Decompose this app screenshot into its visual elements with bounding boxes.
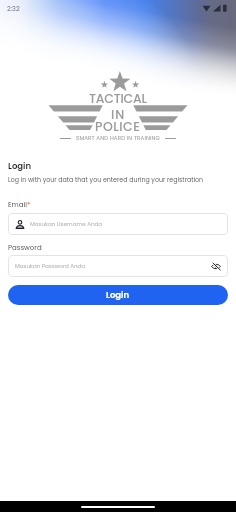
button[interactable]: Login xyxy=(8,285,228,305)
staticText: Login xyxy=(8,160,32,172)
staticText: TACTICAL xyxy=(89,90,147,107)
staticText: Masukan Username Anda xyxy=(30,220,103,228)
button[interactable]: Masukan Password Anda xyxy=(15,255,221,277)
staticText: Email xyxy=(8,200,27,210)
staticText: Log in with your data that you entered d… xyxy=(8,175,204,184)
other: Show password xyxy=(211,262,221,271)
staticText: SMART AND HARD IN TRAINING xyxy=(76,134,160,142)
staticText: Login xyxy=(106,289,130,301)
staticText: 2:32 xyxy=(7,4,20,13)
staticText: IN xyxy=(111,106,126,123)
staticText: Masukan Password Anda xyxy=(15,262,86,270)
staticText: Password xyxy=(8,243,42,253)
staticText: * xyxy=(27,200,31,210)
staticText: POLICE xyxy=(95,118,141,135)
button[interactable]: Masukan Username Anda xyxy=(15,213,221,235)
